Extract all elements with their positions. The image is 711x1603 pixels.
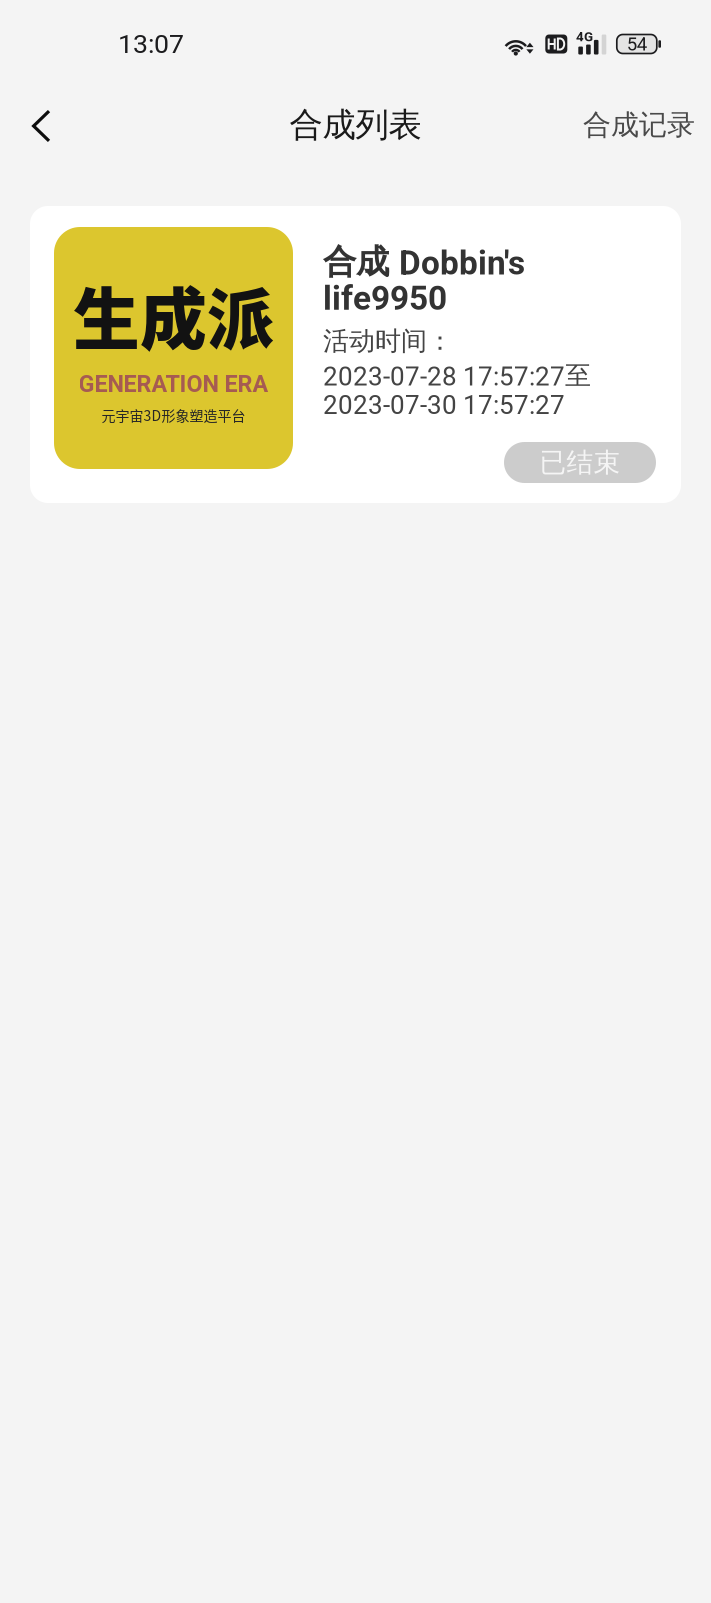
staticText: 生成派 [73, 267, 274, 363]
staticText: 元宇宙3D形象塑造平台 [101, 405, 245, 425]
button[interactable]: 生成派 [30, 206, 681, 503]
staticText: 2023-07-28 17:57:27至 2023-07-30 17:57:27 [323, 360, 591, 419]
staticText: GENERATION ERA [78, 370, 268, 398]
staticText: 4G [576, 29, 593, 44]
button[interactable]: 已结束 [504, 442, 656, 483]
button[interactable]: 合成记录 [563, 94, 711, 162]
staticText: 13:07 [118, 28, 184, 60]
button[interactable]: Back [0, 97, 74, 158]
staticText: 合成列表 [289, 104, 421, 146]
staticText: 合成记录 [583, 107, 695, 143]
staticText: 54 [627, 33, 647, 55]
staticText: 合成 Dobbin's life9950 [323, 243, 525, 316]
staticText: 活动时间： [323, 326, 453, 356]
staticText: 已结束 [539, 446, 620, 479]
